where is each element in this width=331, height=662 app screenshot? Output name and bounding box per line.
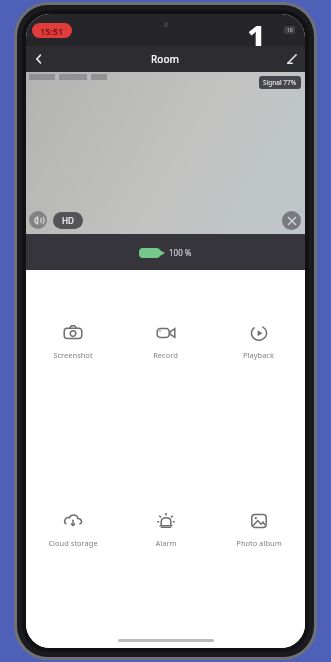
staticText: Screenshot <box>53 350 93 360</box>
staticText: Photo album <box>236 538 282 548</box>
staticText: 100 % <box>169 247 192 258</box>
button[interactable]: Playback <box>212 318 305 364</box>
button[interactable]: Edit <box>279 46 305 72</box>
staticText: HD <box>62 215 74 226</box>
button[interactable]: Alarm <box>119 506 212 552</box>
staticText: Cloud storage <box>48 538 98 548</box>
staticText: 10 <box>287 27 293 34</box>
staticText: 15:51 <box>40 25 64 37</box>
staticText: Room <box>151 52 180 66</box>
staticText: 1 <box>247 14 267 46</box>
button[interactable]: Fullscreen <box>282 211 301 230</box>
button[interactable]: Cloud storage <box>26 506 119 552</box>
button[interactable]: Screenshot <box>26 318 119 364</box>
staticText: Alarm <box>155 538 177 548</box>
staticText: Record <box>153 350 178 360</box>
button[interactable]: Back <box>26 46 52 72</box>
button[interactable]: HD <box>53 212 83 229</box>
staticText: Signal 77% <box>263 78 297 87</box>
button[interactable]: Record <box>119 318 212 364</box>
button[interactable]: Sound <box>29 211 47 229</box>
button[interactable]: Photo album <box>212 506 305 552</box>
staticText: Playback <box>243 350 274 360</box>
